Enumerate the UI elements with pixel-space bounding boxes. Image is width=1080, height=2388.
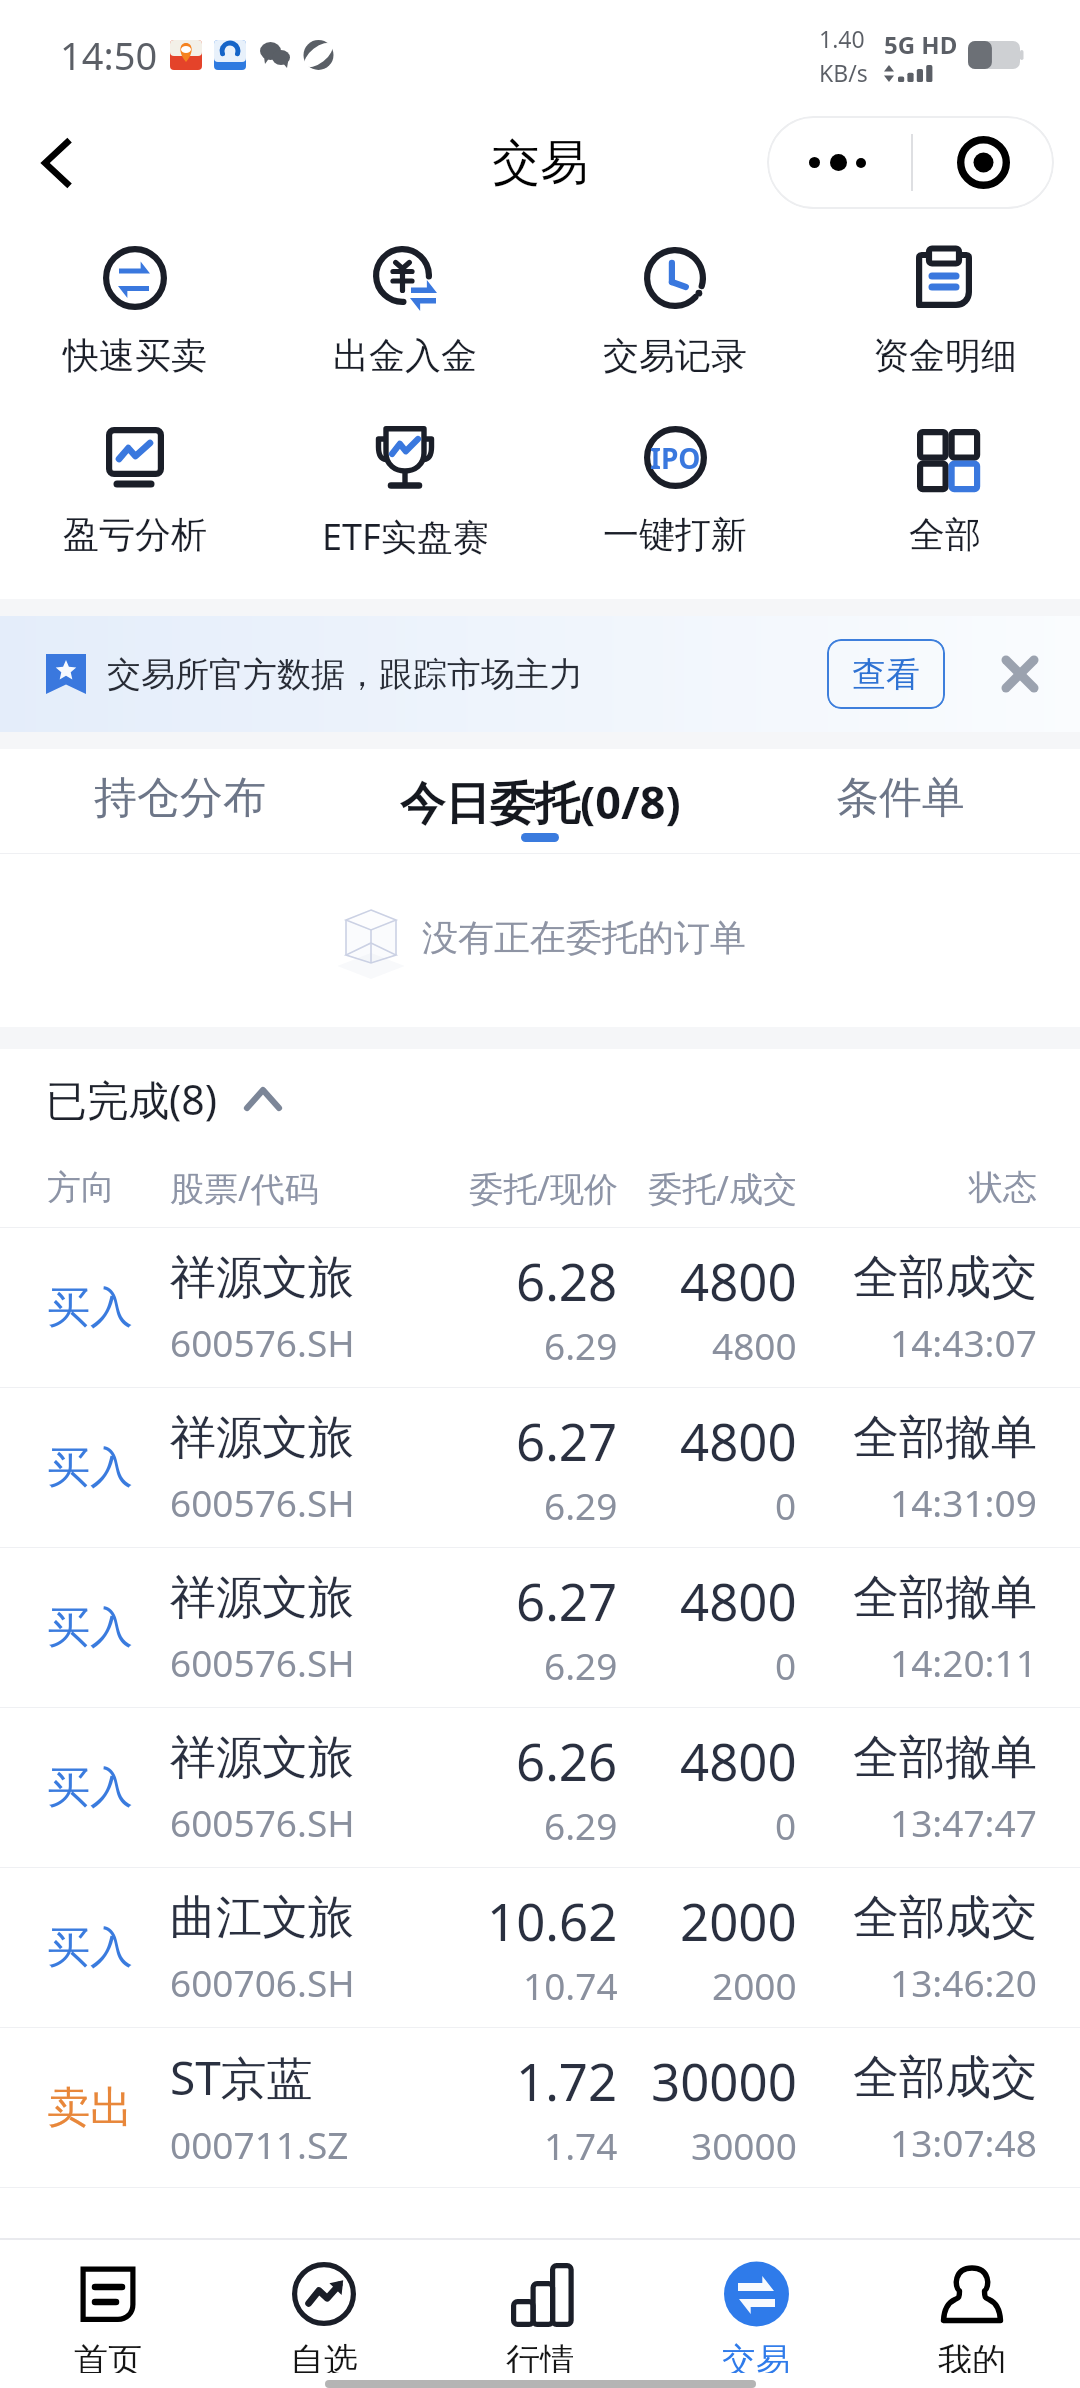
staticText: 一键打新 xyxy=(603,512,747,557)
button[interactable]: 条件单 xyxy=(720,749,1080,853)
staticText: 买入 xyxy=(47,1281,170,1335)
staticText: 600706.SH xyxy=(170,1957,355,2007)
staticText: 600576.SH xyxy=(170,1477,355,1527)
staticText: 4800 xyxy=(680,1406,797,1475)
staticText: 首页 xyxy=(74,2339,142,2373)
staticText: 持仓分布 xyxy=(94,771,266,825)
staticText: 行情 xyxy=(506,2339,574,2373)
button[interactable]: IPO xyxy=(540,419,810,557)
staticText: 买入 xyxy=(47,1761,170,1815)
staticText: 0 xyxy=(775,1480,797,1530)
staticText: 13:07:48 xyxy=(890,2117,1037,2167)
button[interactable]: 买入 xyxy=(0,1868,1080,2028)
button[interactable]: 卖出 xyxy=(0,2028,1080,2188)
button[interactable]: 已完成(8) xyxy=(0,1049,1080,1148)
staticText: 30000 xyxy=(651,2046,797,2115)
staticText: 2000 xyxy=(712,1960,797,2010)
staticText: 1.40 xyxy=(819,23,865,54)
staticText: 快速买卖 xyxy=(63,333,207,378)
staticText: 600576.SH xyxy=(170,1637,355,1687)
staticText: 6.29 xyxy=(544,1640,618,1690)
staticText: 祥源文旅 xyxy=(170,1729,354,1787)
staticText: 14:31:09 xyxy=(890,1477,1037,1527)
button[interactable]: 我的 xyxy=(864,2240,1080,2373)
staticText: 600576.SH xyxy=(170,1797,355,1847)
button[interactable]: 资金明细 xyxy=(810,240,1080,378)
staticText: 5G HD xyxy=(884,28,958,61)
staticText: 委托/现价 xyxy=(438,1165,618,1211)
staticText: 自选 xyxy=(290,2339,358,2373)
staticText: 6.28 xyxy=(516,1246,618,1315)
staticText: 全部成交 xyxy=(853,1249,1037,1307)
staticText: 6.27 xyxy=(516,1406,618,1475)
staticText: 1.72 xyxy=(516,2046,618,2115)
staticText: 出金入金 xyxy=(333,333,477,378)
staticText: 4800 xyxy=(680,1566,797,1635)
staticText: 14:20:11 xyxy=(890,1637,1037,1687)
staticText: 股票/代码 xyxy=(170,1165,438,1211)
staticText: 没有正在委托的订单 xyxy=(422,915,746,960)
staticText: 交易所官方数据，跟踪市场主力 xyxy=(107,653,583,696)
staticText: 30000 xyxy=(691,2120,797,2170)
staticText: 4800 xyxy=(712,1320,797,1370)
staticText: 4800 xyxy=(680,1726,797,1795)
staticText: 全部成交 xyxy=(853,1889,1037,1947)
staticText: 方向 xyxy=(47,1166,170,1209)
staticText: 0 xyxy=(775,1800,797,1850)
button[interactable]: 查看 xyxy=(827,639,945,709)
staticText: ST京蓝 xyxy=(170,2046,313,2109)
button[interactable]: 买入 xyxy=(0,1228,1080,1388)
staticText: 6.27 xyxy=(516,1566,618,1635)
staticText: 6.29 xyxy=(544,1320,618,1370)
button[interactable]: 交易 xyxy=(648,2240,864,2373)
staticText: 交易记录 xyxy=(603,333,747,378)
button[interactable]: 交易所官方数据，跟踪市场主力 xyxy=(0,616,1080,732)
staticText: 祥源文旅 xyxy=(170,1569,354,1627)
button[interactable]: 快速买卖 xyxy=(0,240,270,378)
button[interactable]: 今日委托(0/8) xyxy=(360,749,720,853)
staticText: 全部撤单 xyxy=(853,1729,1037,1787)
button[interactable]: 持仓分布 xyxy=(0,749,360,853)
staticText: 13:47:47 xyxy=(890,1797,1037,1847)
staticText: 全部 xyxy=(909,512,981,557)
staticText: 买入 xyxy=(47,1921,170,1975)
staticText: 祥源文旅 xyxy=(170,1409,354,1467)
staticText: 14:50 xyxy=(60,29,158,81)
staticText: 今日委托(0/8) xyxy=(400,771,681,832)
staticText: IPO xyxy=(650,439,701,477)
button[interactable]: 首页 xyxy=(0,2240,216,2373)
button[interactable]: 交易记录 xyxy=(540,240,810,378)
staticText: 0 xyxy=(775,1640,797,1690)
staticText: 600576.SH xyxy=(170,1317,355,1367)
staticText: 14:43:07 xyxy=(890,1317,1037,1367)
staticText: 全部撤单 xyxy=(853,1409,1037,1467)
staticText: 全部成交 xyxy=(853,2049,1037,2107)
button[interactable]: 行情 xyxy=(432,2240,648,2373)
staticText: 000711.SZ xyxy=(170,2119,349,2169)
button[interactable]: Dismiss banner xyxy=(990,644,1050,704)
button[interactable]: 盈亏分析 xyxy=(0,419,270,557)
staticText: 1.74 xyxy=(544,2120,618,2170)
button[interactable]: 买入 xyxy=(0,1708,1080,1868)
staticText: 卖出 xyxy=(47,2081,170,2135)
button[interactable]: Close mini program xyxy=(913,116,1054,209)
button[interactable]: Back xyxy=(18,123,98,203)
button[interactable]: 买入 xyxy=(0,1548,1080,1708)
staticText: 交易 xyxy=(492,133,588,193)
staticText: 委托/成交 xyxy=(618,1165,797,1211)
button[interactable]: 自选 xyxy=(216,2240,432,2373)
staticText: 祥源文旅 xyxy=(170,1249,354,1307)
staticText: 已完成(8) xyxy=(46,1071,218,1127)
staticText: 买入 xyxy=(47,1441,170,1495)
staticText: 我的 xyxy=(938,2339,1006,2373)
button[interactable]: 全部 xyxy=(810,419,1080,557)
staticText: 10.74 xyxy=(523,1960,618,2010)
staticText: 查看 xyxy=(852,653,920,696)
staticText: 6.29 xyxy=(544,1480,618,1530)
button[interactable]: 出金入金 xyxy=(270,240,540,378)
button[interactable]: 买入 xyxy=(0,1388,1080,1548)
staticText: 曲江文旅 xyxy=(170,1889,354,1947)
staticText: 6.29 xyxy=(544,1800,618,1850)
button[interactable]: More options xyxy=(767,116,911,209)
button[interactable]: ETF实盘赛 xyxy=(270,419,540,561)
